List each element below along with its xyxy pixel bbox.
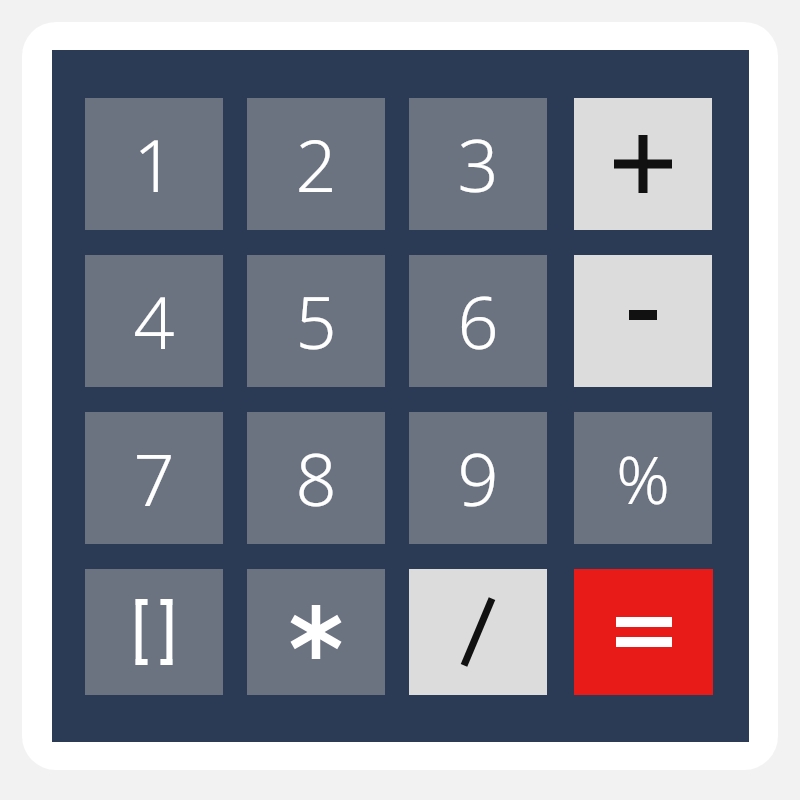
button[interactable]: Plus <box>574 98 712 230</box>
button[interactable]: Two <box>247 98 385 230</box>
button[interactable]: Five <box>247 255 385 387</box>
staticText: 7 <box>133 429 175 527</box>
staticText: 3 <box>457 115 499 213</box>
button[interactable]: Multiply <box>247 569 385 695</box>
button[interactable]: Four <box>85 255 223 387</box>
button[interactable]: Three <box>409 98 547 230</box>
staticText: % <box>616 433 670 523</box>
staticText: 6 <box>457 272 499 370</box>
staticText: 4 <box>133 272 175 370</box>
button[interactable]: Seven <box>85 412 223 544</box>
staticText: 8 <box>295 429 337 527</box>
staticText: 5 <box>295 272 337 370</box>
button[interactable]: Divide <box>409 569 547 695</box>
staticText: 9 <box>457 429 499 527</box>
button[interactable]: Eight <box>247 412 385 544</box>
button[interactable]: Minus <box>574 255 712 387</box>
staticText: 2 <box>295 115 337 213</box>
staticText: 1 <box>133 115 175 213</box>
button[interactable]: Six <box>409 255 547 387</box>
button[interactable]: Nine <box>409 412 547 544</box>
button[interactable]: Brackets <box>85 569 223 695</box>
button[interactable]: Equals <box>574 569 713 695</box>
button[interactable]: Percent <box>574 412 712 544</box>
button[interactable]: One <box>85 98 223 230</box>
